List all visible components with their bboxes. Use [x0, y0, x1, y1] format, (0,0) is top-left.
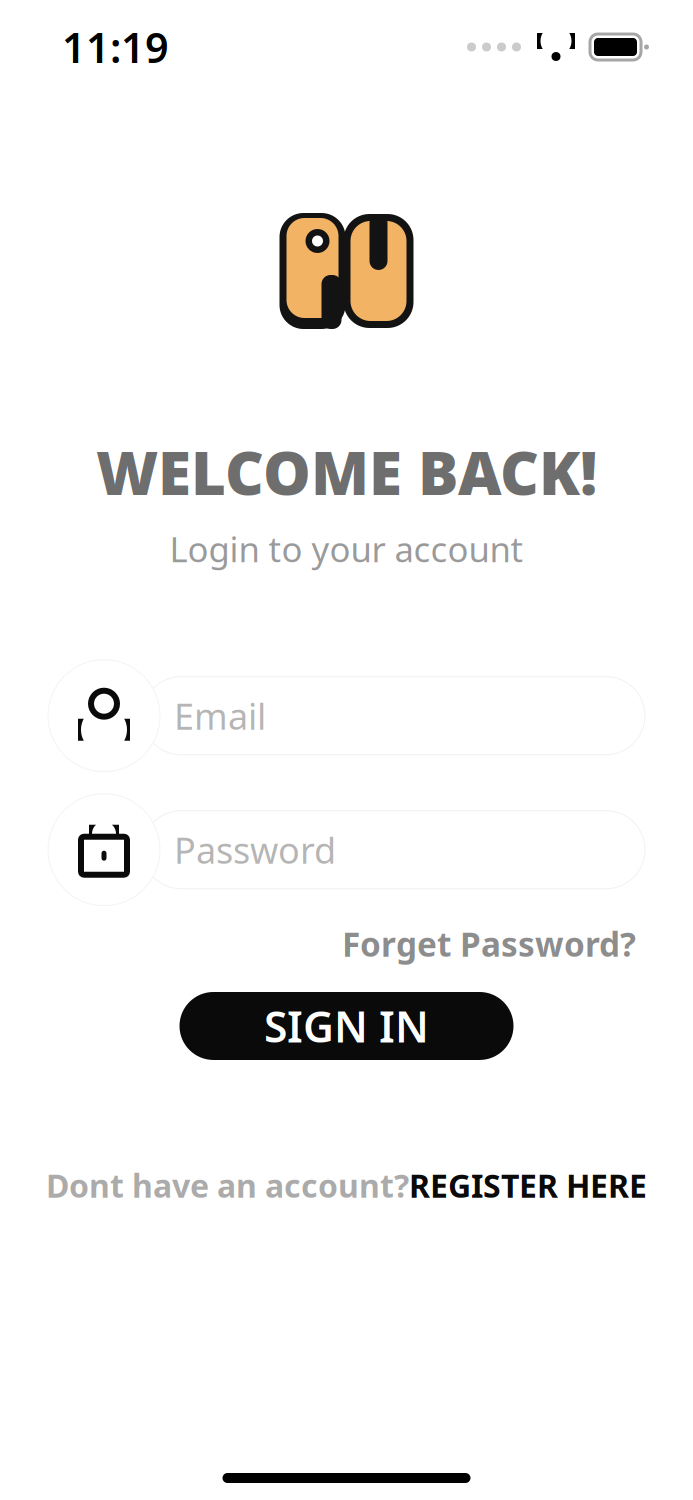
staticText: Dont have an account?: [46, 1164, 409, 1206]
staticText: Login to your account: [169, 526, 523, 572]
staticText: Forget Password?: [342, 922, 636, 966]
button[interactable]: Password: [48, 794, 645, 906]
button[interactable]: SIGN IN: [179, 992, 513, 1060]
staticText: REGISTER HERE: [409, 1164, 647, 1206]
staticText: SIGN IN: [264, 998, 429, 1054]
staticText: Email: [174, 692, 266, 740]
button[interactable]: Email: [48, 660, 645, 772]
staticText: Password: [174, 826, 336, 874]
button[interactable]: Forget Password?: [336, 918, 642, 970]
staticText: 11:19: [62, 20, 169, 74]
staticText: WELCOME BACK!: [96, 432, 597, 512]
button[interactable]: Dont have an account?: [46, 1158, 647, 1212]
